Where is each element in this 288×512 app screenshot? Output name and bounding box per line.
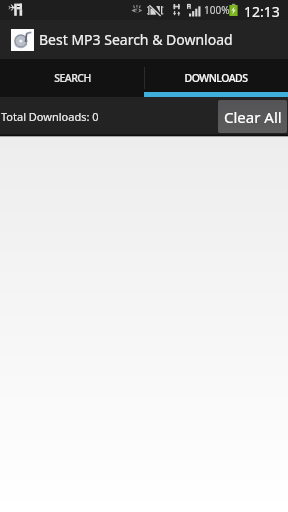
other: Notification	[0, 0, 24, 20]
staticText: 100%	[204, 3, 230, 17]
staticText: Best MP3 Search & Download	[39, 30, 233, 49]
button[interactable]: Clear All	[218, 100, 287, 133]
button[interactable]: DOWNLOADS	[144, 59, 288, 97]
button[interactable]: SEARCH	[0, 59, 144, 97]
staticText: Total Downloads: 0	[1, 109, 99, 124]
staticText: 12:13	[244, 2, 280, 21]
staticText: Clear All	[224, 107, 282, 127]
staticText: DOWNLOADS	[184, 71, 248, 85]
staticText: SEARCH	[54, 71, 91, 85]
